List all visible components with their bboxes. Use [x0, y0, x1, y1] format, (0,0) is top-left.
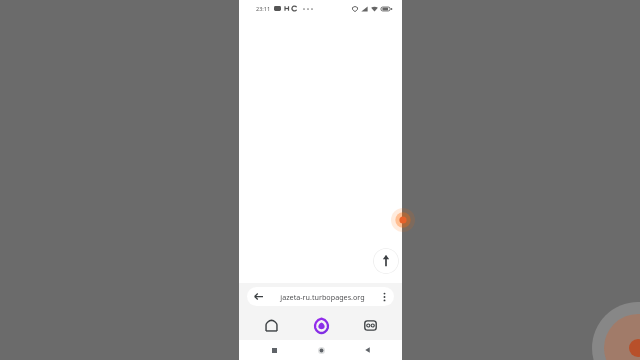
button[interactable]: Back: [356, 340, 378, 360]
button[interactable]: Home: [254, 312, 288, 338]
button[interactable]: Back: [252, 290, 265, 303]
button[interactable]: More options: [380, 290, 389, 303]
staticText: jazeta-ru.turbopages.org: [280, 292, 365, 302]
staticText: 23:11: [256, 5, 271, 12]
button[interactable]: Alice assistant: [304, 312, 338, 338]
button[interactable]: Recent apps: [263, 340, 285, 360]
button[interactable]: Back: [247, 287, 394, 306]
button[interactable]: Home: [310, 340, 332, 360]
button[interactable]: Scroll to top: [373, 248, 399, 274]
button[interactable]: Tabs: [353, 312, 387, 338]
